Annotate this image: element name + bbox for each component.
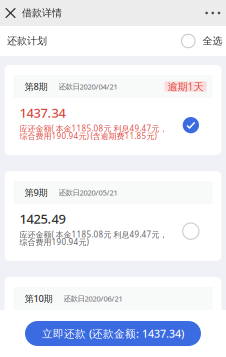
- staticText: 第8期: [24, 80, 47, 93]
- staticText: 立即还款 (还款金额: 1437.34): [42, 326, 184, 341]
- staticText: 应还金额( 本金1185.08元 利息49.47元，: [19, 229, 167, 240]
- staticText: 综合费用190.94元): [19, 343, 88, 353]
- staticText: 1425.49: [19, 210, 65, 228]
- staticText: 第10期: [24, 292, 52, 305]
- staticText: 全选: [202, 35, 222, 47]
- staticText: 还款计划: [7, 35, 47, 47]
- staticText: 综合费用190.94元): [19, 237, 88, 247]
- button[interactable]: 全选: [181, 34, 226, 48]
- staticText: 1437.34: [19, 104, 65, 122]
- staticText: 1425.49: [19, 316, 65, 334]
- staticText: 还款日2020/04/21: [58, 81, 117, 92]
- staticText: 逾期1天: [167, 80, 203, 93]
- staticText: 借款详情: [22, 7, 62, 19]
- staticText: 第9期: [24, 186, 47, 199]
- staticText: 还款日2020/05/21: [58, 187, 117, 198]
- staticText: 应还金额( 本金1185.08元 利息49.47元，: [19, 335, 167, 346]
- button[interactable]: 立即还款 (还款金额: 1437.34): [25, 321, 201, 346]
- staticText: 还款日2020/06/21: [63, 293, 122, 304]
- button[interactable]: More options: [198, 0, 226, 26]
- button[interactable]: Close: [0, 0, 22, 26]
- staticText: 综合费用190.94元) (含逾期费11.85元): [19, 131, 156, 141]
- staticText: 应还金额( 本金1185.08元 利息49.47元，: [19, 123, 167, 134]
